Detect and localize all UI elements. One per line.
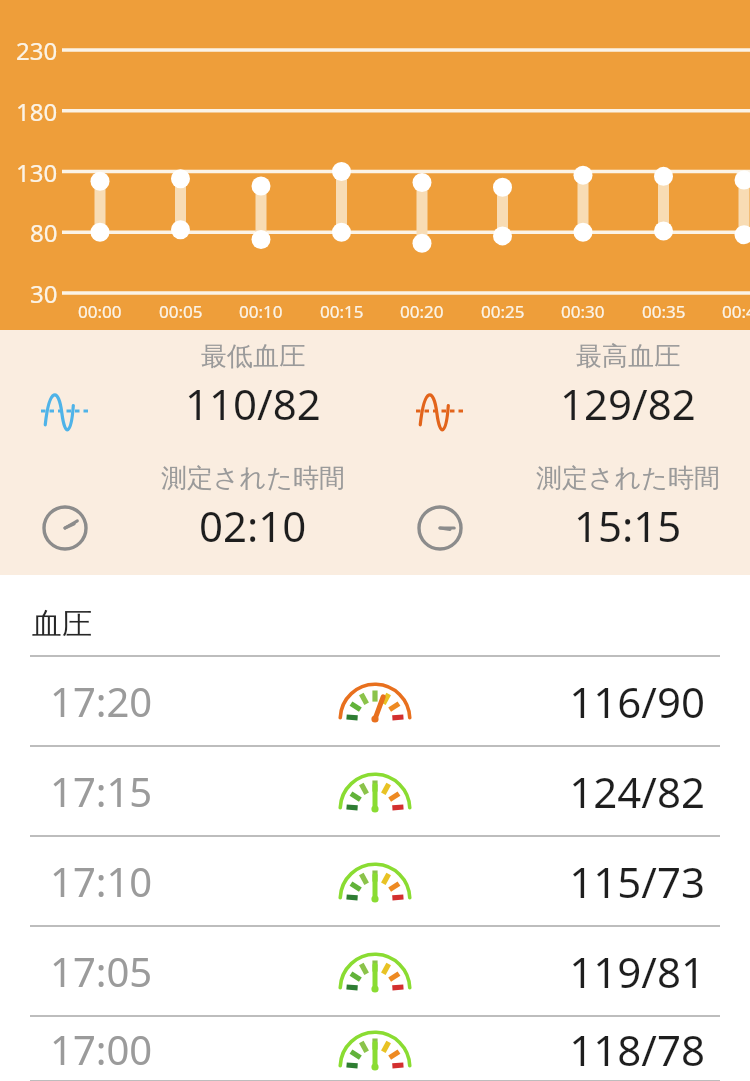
- staticText: 00:25: [481, 300, 525, 323]
- button[interactable]: 17:05: [0, 927, 750, 1015]
- staticText: 17:05: [50, 944, 153, 998]
- other: Measured time: [375, 462, 505, 562]
- staticText: 測定された時間: [161, 462, 345, 495]
- staticText: 00:40: [722, 300, 750, 323]
- staticText: 最高血圧: [576, 340, 680, 373]
- staticText: 測定された時間: [536, 462, 720, 495]
- staticText: 02:10: [199, 497, 307, 554]
- staticText: 血圧: [32, 605, 92, 643]
- staticText: 00:10: [239, 300, 283, 323]
- staticText: 17:10: [50, 854, 153, 908]
- button[interactable]: Blood pressure wave: [0, 330, 375, 575]
- staticText: 00:30: [561, 300, 605, 323]
- staticText: 180: [16, 95, 58, 128]
- staticText: 230: [16, 34, 58, 67]
- staticText: 118/78: [569, 1021, 705, 1078]
- staticText: 124/82: [569, 763, 705, 820]
- staticText: 00:05: [159, 300, 203, 323]
- other: Blood pressure wave: [0, 340, 130, 450]
- staticText: 00:35: [642, 300, 686, 323]
- staticText: 00:00: [78, 300, 122, 323]
- staticText: 80: [30, 216, 58, 249]
- staticText: 130: [16, 156, 58, 189]
- staticText: 115/73: [569, 853, 705, 910]
- staticText: 15:15: [574, 497, 682, 554]
- staticText: 00:15: [320, 300, 364, 323]
- button[interactable]: 17:00: [0, 1017, 750, 1081]
- button[interactable]: 230: [0, 0, 750, 330]
- button[interactable]: 17:15: [0, 747, 750, 835]
- other: Blood pressure wave: [375, 340, 505, 450]
- button[interactable]: 17:20: [0, 657, 750, 745]
- staticText: 129/82: [560, 375, 696, 432]
- staticText: 00:20: [400, 300, 444, 323]
- staticText: 17:20: [50, 674, 153, 728]
- button[interactable]: 17:10: [0, 837, 750, 925]
- staticText: 17:00: [50, 1022, 153, 1076]
- staticText: 119/81: [569, 943, 705, 1000]
- other: Measured time: [0, 462, 130, 562]
- staticText: 17:15: [50, 764, 153, 818]
- staticText: 最低血圧: [201, 340, 305, 373]
- staticText: 116/90: [569, 673, 705, 730]
- button[interactable]: Blood pressure wave: [375, 330, 750, 575]
- staticText: 110/82: [185, 375, 321, 432]
- staticText: 30: [30, 277, 58, 310]
